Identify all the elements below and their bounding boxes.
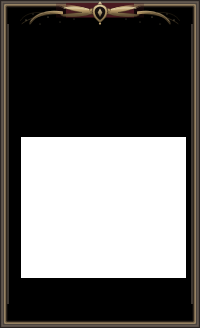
button[interactable]: Emblem [88,2,112,28]
